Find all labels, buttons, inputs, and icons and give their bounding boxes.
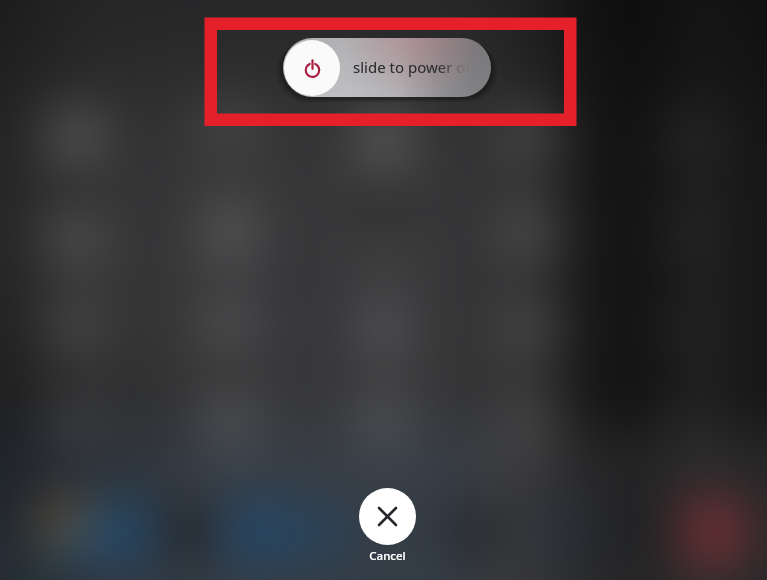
button[interactable]: slide to power off <box>283 38 491 97</box>
staticText: Cancel <box>369 548 406 564</box>
other: Power off <box>284 40 340 96</box>
button[interactable]: Cancel <box>359 488 416 561</box>
staticText: slide to power off <box>353 57 476 77</box>
